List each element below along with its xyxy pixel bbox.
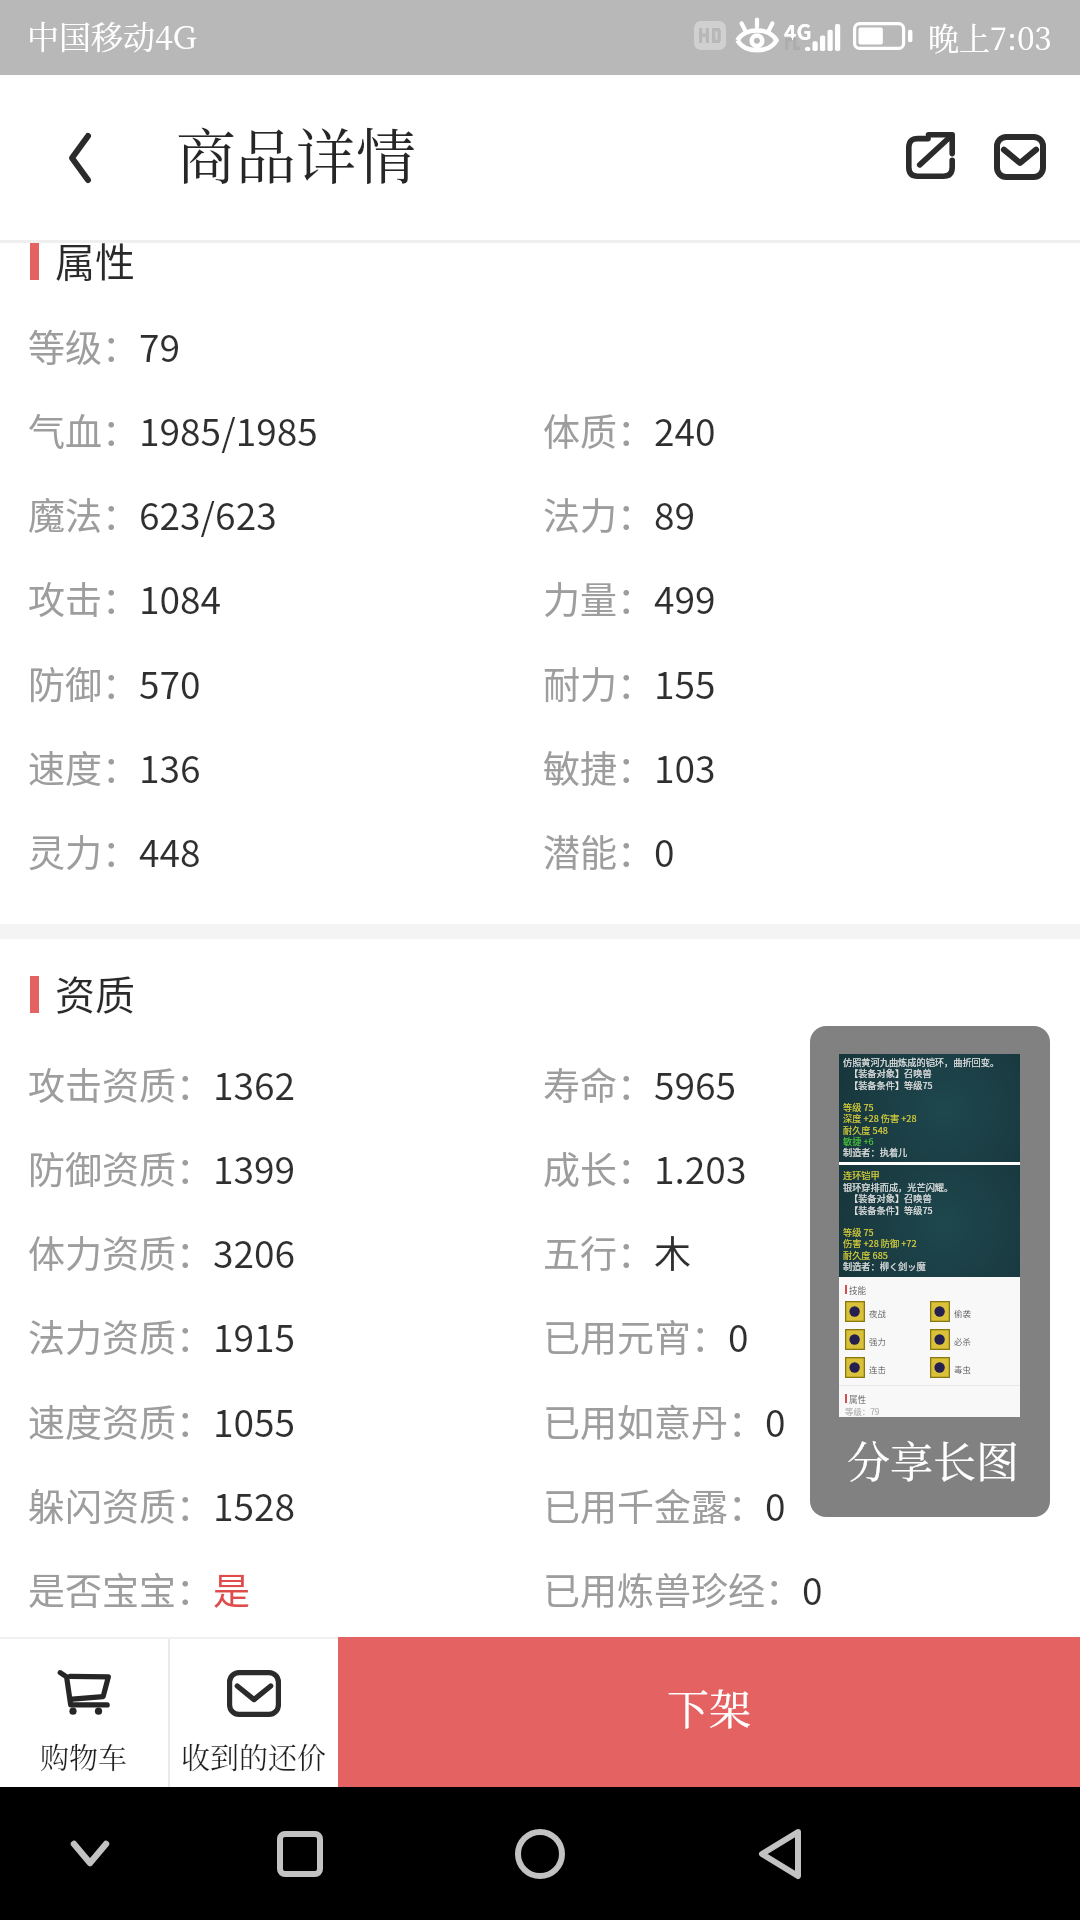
staticText: 连环铠甲 [843,1168,880,1181]
staticText: 技能 [849,1284,867,1296]
staticText: 分享长图 [847,1429,1019,1491]
staticText: 敏捷 +6 [843,1134,874,1147]
staticText: 五行： [543,1225,654,1279]
staticText: 3206 [213,1225,296,1279]
staticText: 夜战 [869,1307,886,1319]
staticText: 1084 [139,571,222,625]
staticText: 灵力： [28,824,139,878]
staticText: 240 [654,403,716,457]
staticText: 【装备对象】召唤兽 [849,1191,932,1204]
staticText: 0 [765,1478,786,1532]
staticText: 强力 [869,1335,886,1347]
staticText: 136 [139,740,201,794]
staticText: 寿命： [543,1057,654,1111]
staticText: 伤害 +28 防御 +72 [843,1236,917,1249]
staticText: 1.203 [654,1141,747,1195]
staticText: 制造者：执着儿 [843,1145,908,1158]
staticText: 79 [139,319,181,373]
staticText: 晚上7:03 [928,14,1052,59]
staticText: 等级 75 [843,1100,874,1113]
staticText: 89 [654,487,696,541]
staticText: 1915 [213,1309,296,1363]
staticText: 耐久度 685 [843,1248,888,1261]
button[interactable]: Home [480,1794,600,1914]
staticText: 耐力： [543,656,654,710]
staticText: 耐久度 548 [843,1123,888,1136]
staticText: 0 [728,1309,749,1363]
staticText: 收到的还价 [181,1736,327,1778]
staticText: 1055 [213,1394,296,1448]
staticText: 偷袭 [954,1307,971,1319]
staticText: 是 [213,1562,250,1616]
staticText: 448 [139,824,201,878]
button[interactable]: Back [25,103,135,213]
staticText: 速度： [28,740,139,794]
staticText: 气血： [28,403,139,457]
button[interactable]: 购物车 [0,1637,168,1787]
staticText: 魔法： [28,487,139,541]
staticText: 0 [765,1394,786,1448]
staticText: 毒虫 [954,1363,971,1375]
button[interactable]: 分享长图 [810,1026,1050,1517]
staticText: 155 [654,656,716,710]
staticText: 购物车 [40,1736,128,1778]
staticText: 躲闪资质： [28,1478,213,1532]
button[interactable]: Back [720,1794,840,1914]
staticText: 570 [139,656,201,710]
staticText: 制造者：柳く剑ッ魔 [843,1259,926,1272]
staticText: 623/623 [139,487,277,541]
staticText: 等级 75 [843,1225,874,1238]
staticText: 力量： [543,571,654,625]
staticText: 潜能： [543,824,654,878]
staticText: 4G [784,16,812,46]
staticText: 木 [654,1225,691,1279]
button[interactable]: Recents [240,1794,360,1914]
staticText: 【装备条件】等级75 [849,1078,933,1091]
button[interactable]: Messages [972,109,1068,205]
staticText: 速度资质： [28,1394,213,1448]
staticText: 5965 [654,1057,737,1111]
staticText: 等级： [28,319,139,373]
staticText: 敏捷： [543,740,654,794]
staticText: 属性 [849,1393,867,1405]
button[interactable]: Share [882,107,978,203]
staticText: 攻击资质： [28,1057,213,1111]
staticText: 1985/1985 [139,403,318,457]
staticText: 已用千金露： [543,1478,765,1532]
staticText: 103 [654,740,716,794]
staticText: 攻击： [28,571,139,625]
staticText: 体质： [543,403,654,457]
staticText: 【装备条件】等级75 [849,1203,933,1216]
staticText: 已用炼兽珍经： [543,1562,802,1616]
staticText: 防御： [28,656,139,710]
staticText: 银环穿排而成，光芒闪耀。 [843,1180,954,1193]
staticText: 连击 [869,1363,886,1375]
staticText: 下架 [667,1677,752,1737]
staticText: 499 [654,571,716,625]
staticText: 【装备对象】召唤兽 [849,1066,932,1079]
staticText: 防御资质： [28,1141,213,1195]
staticText: 是否宝宝： [28,1562,213,1616]
staticText: 1399 [213,1141,296,1195]
staticText: 仿照黄河九曲炼成的铠环，曲折回变。 [843,1055,1000,1068]
staticText: 1362 [213,1057,296,1111]
staticText: 深度 +28 伤害 +28 [843,1111,917,1124]
staticText: 0 [654,824,675,878]
staticText: 已用如意丹： [543,1394,765,1448]
button[interactable]: 收到的还价 [170,1637,338,1787]
staticText: 商品详情 [176,110,416,196]
staticText: 法力： [543,487,654,541]
button[interactable]: Hide keyboard [30,1794,150,1914]
staticText: 法力资质： [28,1309,213,1363]
staticText: 等级：79 [845,1405,880,1417]
staticText: 1528 [213,1478,296,1532]
staticText: 已用元宵： [543,1309,728,1363]
button[interactable]: 下架 [338,1637,1080,1787]
staticText: 必杀 [954,1335,971,1347]
staticText: 0 [802,1562,823,1616]
staticText: 属性 [55,231,135,289]
staticText: 成长： [543,1141,654,1195]
staticText: 体力资质： [28,1225,213,1279]
staticText: 中国移动4G [27,12,197,58]
staticText: 资质 [55,964,135,1022]
